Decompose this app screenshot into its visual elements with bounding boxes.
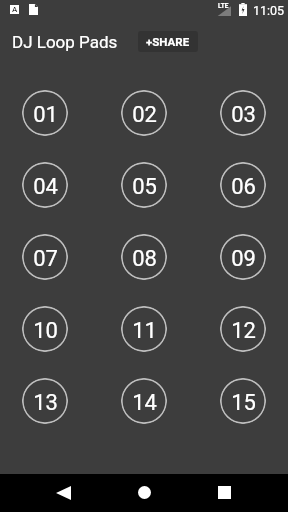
staticText: 09 — [231, 246, 256, 272]
staticText: 05 — [132, 174, 157, 200]
staticText: 11 — [132, 318, 157, 344]
button[interactable]: 09 — [220, 234, 266, 280]
button[interactable]: 11 — [121, 306, 167, 352]
button[interactable]: 14 — [121, 378, 167, 424]
staticText: 15 — [231, 390, 256, 416]
staticText: 13 — [33, 390, 58, 416]
staticText: +SHARE — [146, 35, 190, 48]
staticText: 07 — [33, 246, 58, 272]
staticText: 06 — [231, 174, 256, 200]
button[interactable]: 07 — [22, 234, 68, 280]
staticText: LTE — [218, 2, 229, 10]
staticText: 02 — [132, 102, 157, 128]
button[interactable]: +SHARE — [138, 31, 198, 52]
button[interactable]: Home — [124, 473, 164, 511]
button[interactable]: 13 — [22, 378, 68, 424]
button[interactable]: 12 — [220, 306, 266, 352]
button[interactable]: 01 — [22, 90, 68, 136]
staticText: 04 — [33, 174, 58, 200]
staticText: 14 — [132, 390, 157, 416]
staticText: A — [12, 5, 18, 14]
button[interactable]: 15 — [220, 378, 266, 424]
staticText: 12 — [231, 318, 256, 344]
staticText: 03 — [231, 102, 256, 128]
button[interactable]: 05 — [121, 162, 167, 208]
staticText: 11:05 — [253, 3, 285, 18]
button[interactable]: 06 — [220, 162, 266, 208]
button[interactable]: Back — [43, 474, 83, 512]
button[interactable]: Recents — [204, 473, 244, 511]
button[interactable]: 03 — [220, 90, 266, 136]
staticText: 08 — [132, 246, 157, 272]
staticText: DJ Loop Pads — [12, 32, 118, 52]
staticText: 10 — [33, 318, 58, 344]
button[interactable]: 10 — [22, 306, 68, 352]
button[interactable]: 02 — [121, 90, 167, 136]
button[interactable]: 08 — [121, 234, 167, 280]
button[interactable]: 04 — [22, 162, 68, 208]
staticText: 01 — [33, 102, 58, 128]
